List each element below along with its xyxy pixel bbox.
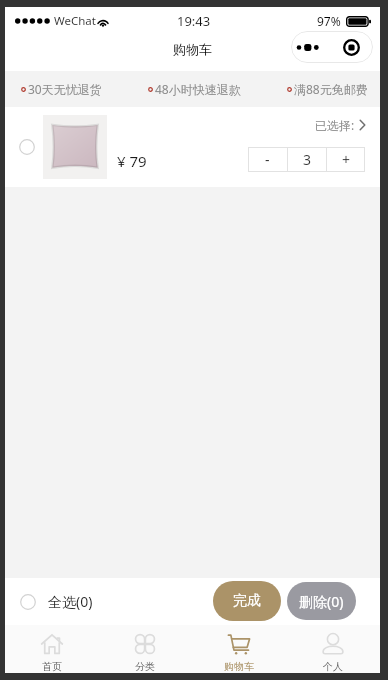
staticText: 已选择: — [315, 117, 355, 133]
staticText: 97% — [317, 13, 341, 29]
button[interactable]: Close mini program — [332, 31, 373, 63]
staticText: + — [342, 150, 351, 169]
button[interactable]: More — [291, 31, 332, 63]
staticText: 满88元免邮费 — [294, 81, 368, 97]
staticText: 3 — [303, 150, 312, 169]
staticText: ¥ 79 — [117, 151, 147, 171]
staticText: 48小时快速退款 — [155, 81, 241, 97]
staticText: 购物车 — [224, 660, 254, 673]
button[interactable]: Select all — [20, 592, 93, 611]
staticText: - — [265, 150, 270, 169]
button[interactable]: Home — [5, 625, 98, 673]
staticText: 30天无忧退货 — [28, 81, 102, 97]
button[interactable]: 已选择: — [315, 117, 366, 133]
button[interactable]: Increase quantity — [327, 147, 365, 172]
button[interactable]: Decrease quantity — [248, 147, 287, 172]
button[interactable]: Categories — [98, 625, 192, 673]
staticText: 分类 — [135, 660, 155, 673]
staticText: 19:43 — [177, 12, 211, 30]
staticText: 个人 — [323, 660, 343, 673]
button[interactable]: 删除(0) — [287, 582, 356, 620]
staticText: 全选(0) — [48, 592, 93, 611]
staticText: 完成 — [233, 592, 261, 610]
staticText: 首页 — [42, 660, 62, 673]
staticText: 购物车 — [173, 41, 212, 57]
button[interactable]: Select item — [19, 139, 35, 155]
button[interactable]: 完成 — [213, 581, 281, 621]
staticText: WeChat — [54, 13, 96, 29]
staticText: 删除(0) — [299, 592, 344, 611]
button[interactable]: Cart — [192, 625, 286, 673]
button[interactable]: Profile — [286, 625, 380, 673]
